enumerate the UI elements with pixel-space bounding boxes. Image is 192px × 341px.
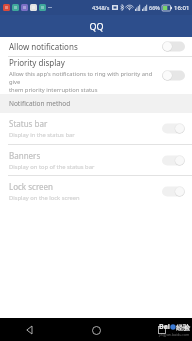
- button[interactable]: Banners: [0, 145, 192, 175]
- staticText: Display in the status bar: [9, 131, 75, 139]
- staticText: jingyan.baidu.com: [159, 332, 190, 337]
- staticText: QQ: [89, 20, 104, 32]
- staticText: 16:01: [174, 4, 190, 12]
- button[interactable]: Allow notifications: [0, 37, 192, 56]
- staticText: Lock screen: [9, 181, 54, 192]
- staticText: Display on the lock screen: [9, 194, 80, 202]
- button[interactable]: Toggle: [162, 70, 185, 81]
- button[interactable]: Toggle: [162, 41, 185, 52]
- button[interactable]: Back: [22, 322, 38, 338]
- staticText: Notification method: [9, 99, 71, 108]
- staticText: 66%: [149, 4, 160, 11]
- staticText: Display on top of the status bar: [9, 163, 95, 171]
- button[interactable]: Status bar: [0, 113, 192, 144]
- staticText: Bai: [159, 322, 170, 332]
- button[interactable]: Toggle: [162, 123, 185, 134]
- staticText: 4348/s: [92, 4, 110, 11]
- button[interactable]: Toggle: [162, 186, 185, 197]
- staticText: Banners: [9, 150, 41, 161]
- button[interactable]: Home: [88, 322, 104, 338]
- button[interactable]: Lock screen: [0, 176, 192, 207]
- staticText: Allow this app's notifications to ring w…: [9, 70, 158, 94]
- staticText: Priority display: [9, 57, 65, 68]
- button[interactable]: Priority display: [0, 57, 192, 94]
- staticText: Allow notifications: [9, 41, 78, 52]
- button[interactable]: Recent apps: [154, 322, 170, 338]
- staticText: Status bar: [9, 118, 48, 129]
- staticText: 经验: [176, 323, 190, 332]
- button[interactable]: Toggle: [162, 155, 185, 166]
